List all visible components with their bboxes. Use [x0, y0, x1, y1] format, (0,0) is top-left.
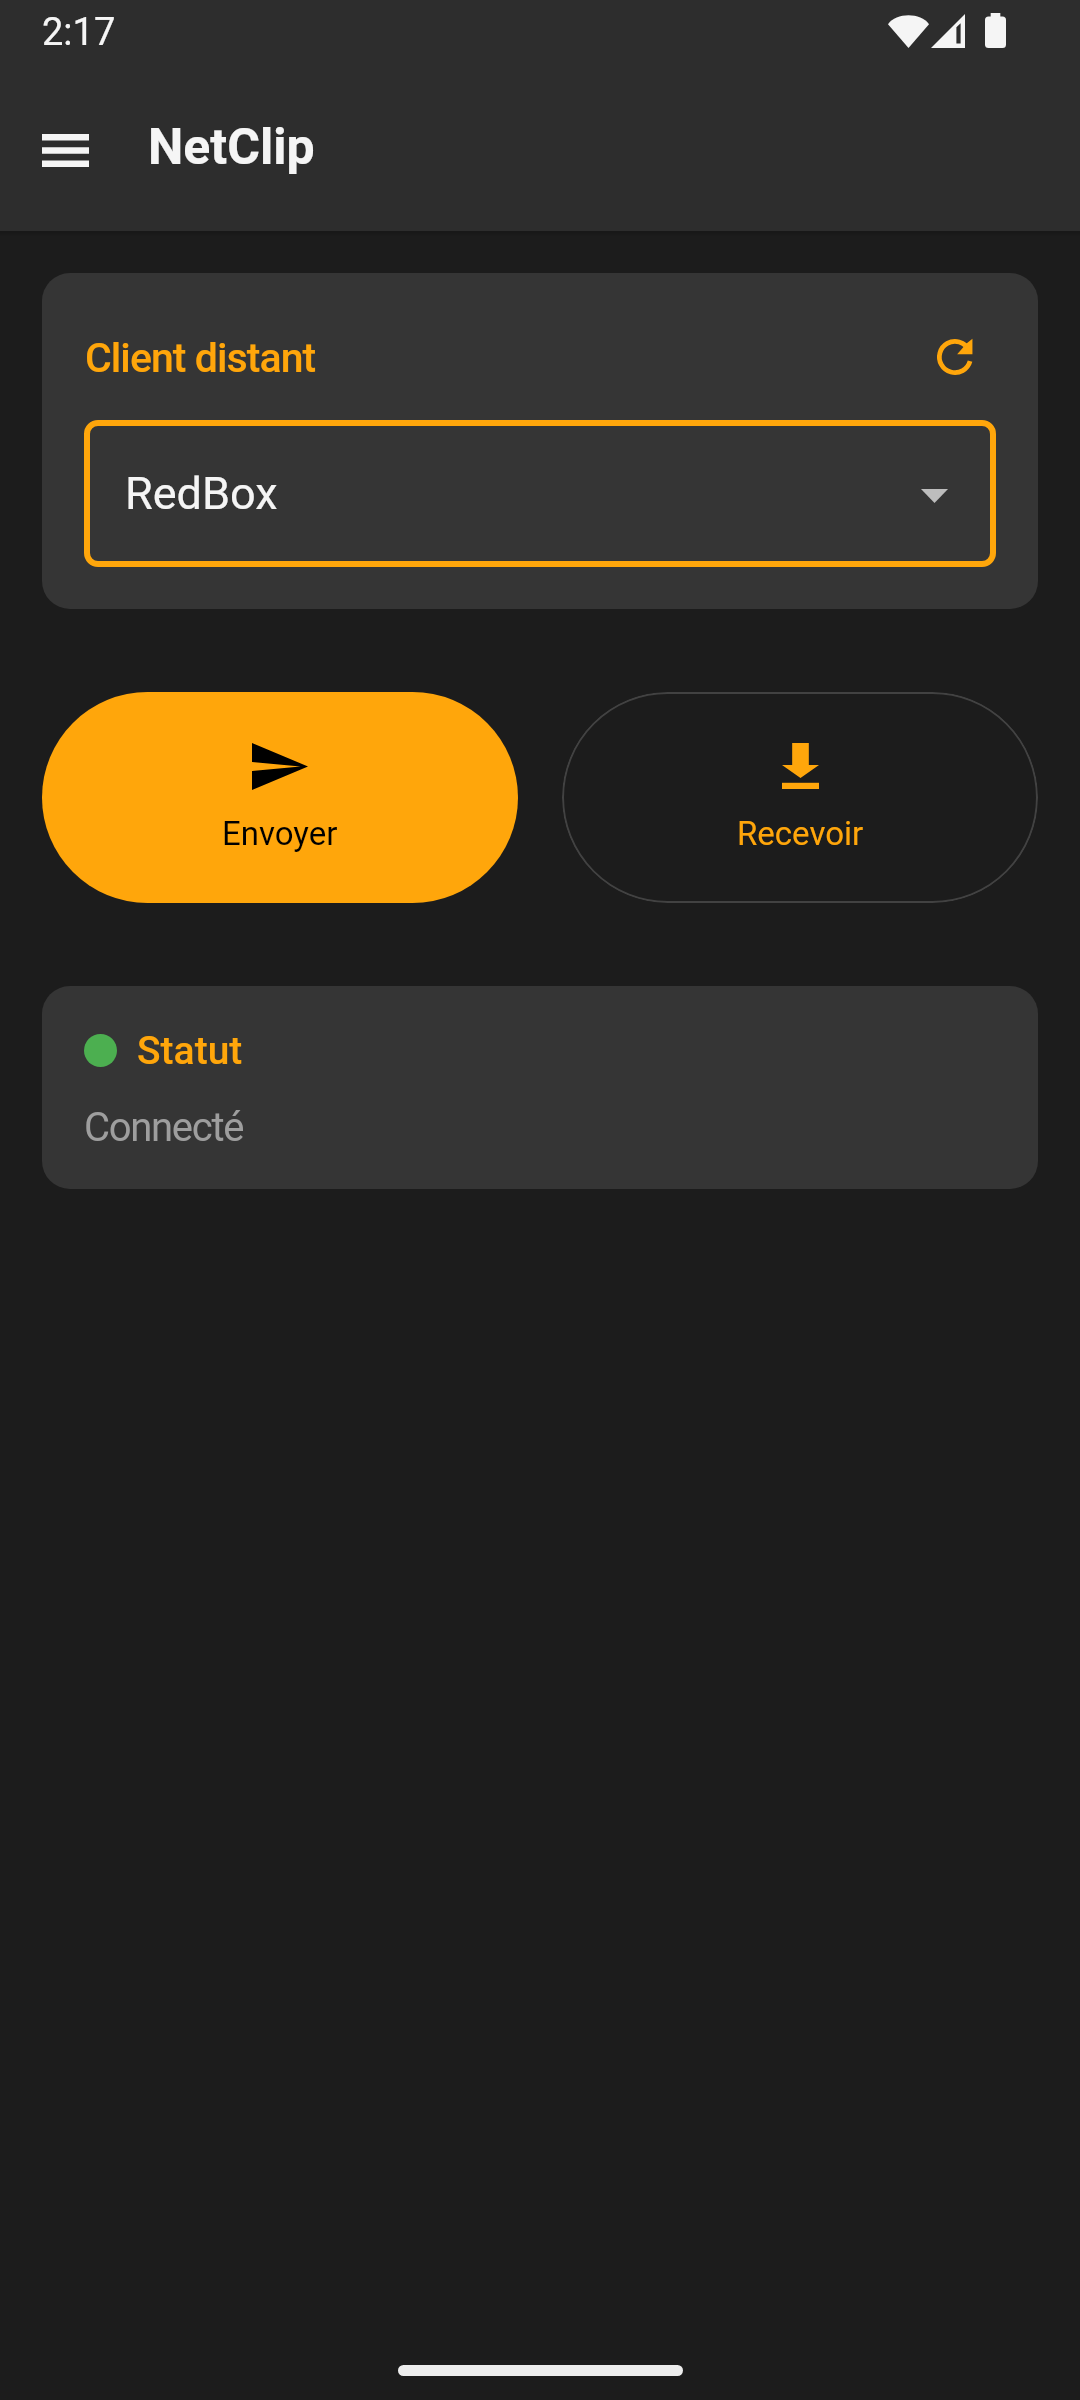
staticText: Statut: [137, 1028, 243, 1074]
staticText: 2:17: [42, 10, 116, 55]
button[interactable]: Refresh: [913, 315, 996, 398]
button[interactable]: Statut: [42, 986, 1038, 1189]
staticText: Envoyer: [222, 814, 338, 853]
staticText: Connecté: [84, 1104, 244, 1151]
button[interactable]: Envoyer: [42, 692, 518, 903]
staticText: Recevoir: [737, 814, 864, 853]
button[interactable]: RedBox: [84, 420, 996, 567]
button[interactable]: Recevoir: [562, 692, 1038, 903]
staticText: RedBox: [125, 467, 278, 520]
button[interactable]: Menu: [18, 103, 113, 198]
staticText: NetClip: [148, 118, 315, 177]
staticText: Client distant: [85, 334, 316, 382]
